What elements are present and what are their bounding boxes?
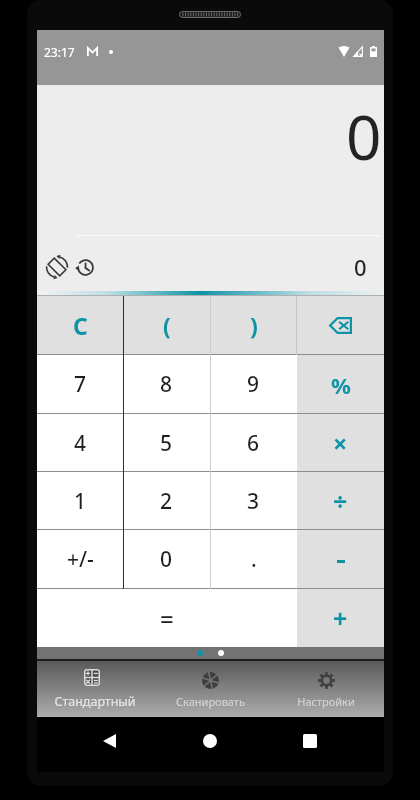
staticText: 4	[74, 429, 87, 458]
staticText: 5	[160, 429, 173, 458]
button[interactable]: %	[297, 355, 384, 414]
staticText: )	[250, 310, 258, 341]
staticText: 0	[160, 545, 173, 574]
button[interactable]: 7	[37, 355, 123, 414]
button[interactable]: 5	[123, 414, 210, 472]
button[interactable]: Back	[95, 727, 123, 755]
button[interactable]: Minus	[297, 530, 384, 589]
button[interactable]: 2	[123, 472, 210, 530]
staticText: Сканировать	[176, 694, 245, 709]
staticText: %	[331, 370, 351, 400]
button[interactable]: Настройки	[268, 661, 384, 717]
staticText: 9	[247, 370, 260, 399]
button[interactable]: Recents	[296, 727, 324, 755]
other: Backspace	[329, 317, 352, 334]
button[interactable]: =	[37, 589, 297, 647]
staticText: 3	[247, 487, 260, 516]
button[interactable]: 4	[37, 414, 123, 472]
button[interactable]: 3	[210, 472, 297, 530]
button[interactable]: +	[297, 589, 384, 647]
button[interactable]: 6	[210, 414, 297, 472]
staticText: 8	[160, 370, 173, 399]
staticText: Стандартный	[54, 693, 136, 710]
button[interactable]: +/-	[37, 530, 123, 589]
button[interactable]: Backspace	[297, 295, 384, 355]
button[interactable]: Home	[196, 727, 224, 755]
staticText: 0	[354, 252, 367, 282]
button[interactable]: Стандартный	[37, 661, 152, 717]
staticText: ×	[333, 426, 348, 460]
button[interactable]: History	[72, 255, 96, 279]
staticText: +	[333, 601, 348, 635]
staticText: 7	[74, 370, 87, 399]
staticText: ÷	[333, 484, 348, 518]
staticText: (	[163, 310, 171, 341]
button[interactable]: 8	[123, 355, 210, 414]
staticText: =	[160, 602, 174, 635]
staticText: +/-	[67, 545, 94, 574]
staticText: 0	[346, 94, 382, 178]
button[interactable]: (	[123, 295, 210, 355]
button[interactable]: ÷	[297, 472, 384, 530]
staticText: Настройки	[297, 694, 355, 709]
button[interactable]: Rotate screen	[45, 255, 69, 279]
button[interactable]: 1	[37, 472, 123, 530]
button[interactable]: 9	[210, 355, 297, 414]
staticText: 2	[160, 487, 173, 516]
staticText: 23:17	[44, 44, 75, 60]
staticText: 1	[74, 487, 87, 516]
button[interactable]: .	[210, 530, 297, 589]
button[interactable]: C	[37, 295, 123, 355]
button[interactable]: ×	[297, 414, 384, 472]
staticText: 6	[247, 429, 260, 458]
staticText: C	[73, 310, 88, 341]
staticText: .	[251, 545, 257, 574]
button[interactable]: )	[210, 295, 297, 355]
button[interactable]: Сканировать	[152, 661, 268, 717]
button[interactable]: 0	[123, 530, 210, 589]
